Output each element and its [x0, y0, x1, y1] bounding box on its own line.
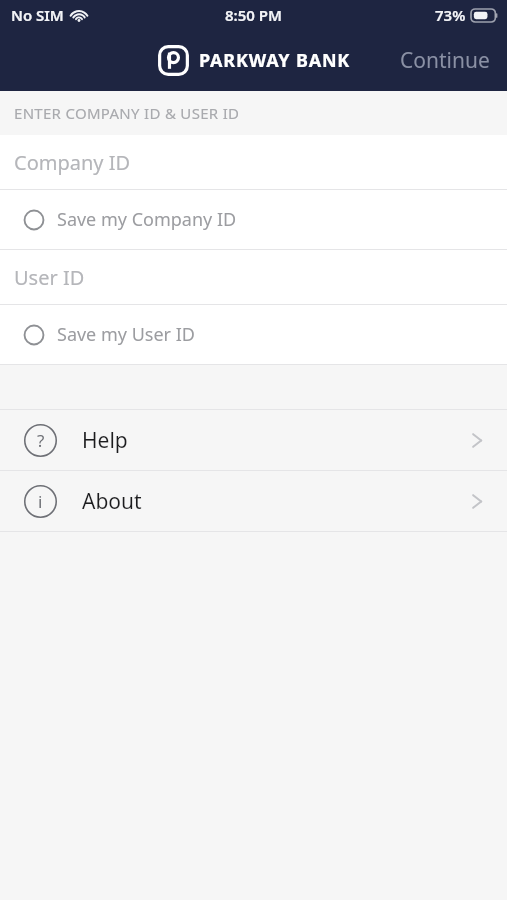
staticText: ? [37, 429, 45, 452]
button[interactable]: Save my User ID [0, 305, 507, 364]
button[interactable]: Company ID [0, 135, 507, 189]
button[interactable]: Help [0, 410, 507, 470]
staticText: About [82, 487, 142, 516]
staticText: Continue [400, 46, 490, 75]
staticText: ENTER COMPANY ID & USER ID [14, 103, 240, 123]
staticText: Save my Company ID [57, 207, 237, 232]
staticText: No SIM [11, 5, 64, 25]
staticText: Help [82, 426, 128, 455]
button[interactable]: Continue [383, 34, 507, 87]
staticText: i [38, 490, 43, 513]
other: Help [23, 423, 58, 458]
button[interactable]: About [0, 471, 507, 531]
staticText: 8:50 PM [225, 5, 282, 25]
staticText: User ID [14, 264, 85, 291]
staticText: PARKWAY BANK [199, 48, 351, 73]
staticText: 73% [435, 5, 466, 25]
button[interactable]: Save my Company ID [0, 190, 507, 249]
staticText: Save my User ID [57, 322, 195, 347]
button[interactable]: User ID [0, 250, 507, 304]
staticText: Company ID [14, 149, 131, 176]
other: About [23, 484, 58, 519]
